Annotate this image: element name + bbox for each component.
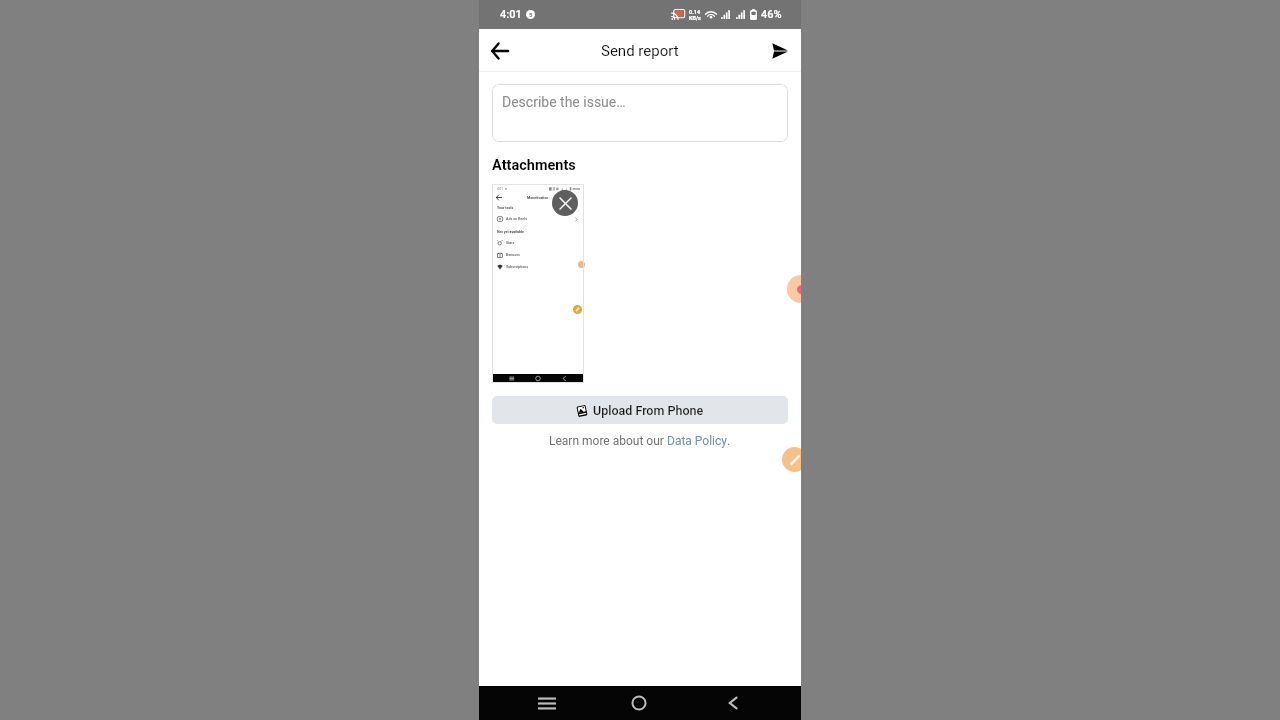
button[interactable]: Back (711, 686, 755, 720)
button[interactable]: Remove attachment (552, 190, 578, 216)
staticText: Data Policy (667, 434, 727, 448)
button[interactable]: Recording indicator (787, 275, 801, 303)
staticText: 46% (761, 8, 782, 21)
staticText: Bonuses (506, 253, 520, 257)
button[interactable]: Send (765, 36, 795, 66)
button[interactable]: Data Policy (667, 434, 727, 448)
staticText: Ads on Reels (506, 217, 527, 221)
staticText: Attachments (492, 157, 576, 174)
staticText: Describe the issue… (502, 94, 626, 110)
button[interactable]: Describe the issue… (492, 84, 788, 142)
button[interactable]: Back (485, 36, 515, 66)
staticText: 4:01 (497, 187, 504, 191)
staticText: Send report (601, 42, 679, 60)
button[interactable]: Recent apps (525, 686, 569, 720)
button[interactable]: Upload From Phone (492, 396, 788, 424)
button[interactable]: Draw (782, 447, 801, 472)
staticText: KB/s (689, 15, 701, 21)
staticText: 4:01 (500, 8, 522, 21)
staticText: Not yet available (497, 230, 524, 234)
staticText: . (727, 434, 731, 448)
staticText: Your tools (497, 206, 514, 210)
button[interactable]: Attachment preview (492, 184, 584, 383)
staticText: Subscriptions (506, 265, 529, 269)
staticText: Upload From Phone (593, 403, 704, 418)
staticText: Learn more about our (549, 434, 667, 448)
button[interactable]: Home (617, 686, 661, 720)
staticText: 0.14 (689, 9, 701, 15)
staticText: Monetisation (527, 196, 549, 200)
staticText: 5 (529, 11, 533, 18)
staticText: Stars (506, 241, 515, 245)
